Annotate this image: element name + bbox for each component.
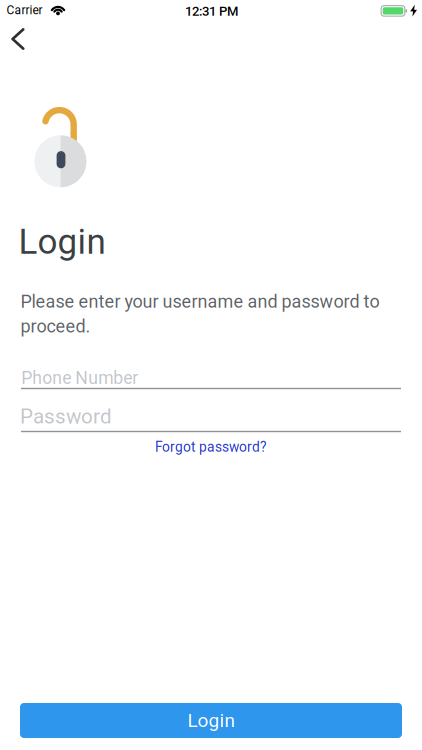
staticText: Phone Number [21,368,138,388]
staticText: Password [20,405,112,428]
staticText: Login [187,710,234,731]
staticText: Login [18,222,105,262]
staticText: Please enter your username and password … [20,291,379,336]
button[interactable]: Back [0,17,44,61]
staticText: Forgot password? [155,439,267,455]
button[interactable]: Login [20,703,402,738]
button[interactable]: Forgot password? [155,439,267,455]
staticText: Carrier [6,3,42,17]
staticText: 12:31 PM [185,4,238,19]
